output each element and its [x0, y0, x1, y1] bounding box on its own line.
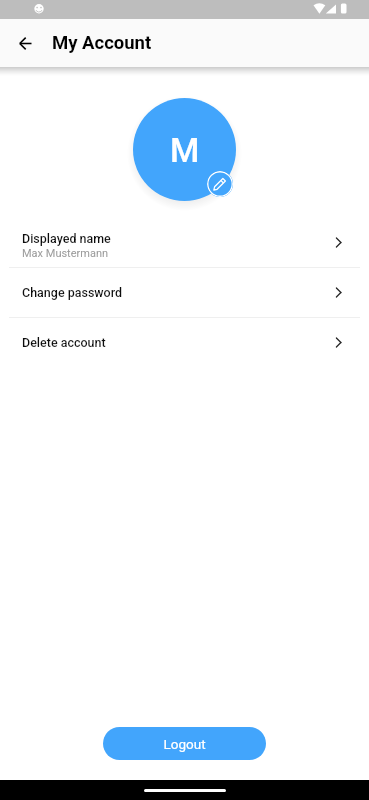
staticText: Delete account — [22, 335, 106, 350]
button[interactable]: Delete account — [0, 318, 369, 367]
button[interactable]: Edit profile picture — [207, 171, 233, 197]
staticText: Max Mustermann — [22, 247, 109, 260]
staticText: Logout — [163, 736, 206, 752]
button[interactable]: M — [133, 98, 236, 201]
staticText: M — [170, 131, 200, 170]
staticText: My Account — [52, 32, 152, 54]
button[interactable]: Change password — [0, 268, 369, 317]
staticText: Change password — [22, 285, 123, 300]
button[interactable]: Displayed name — [0, 218, 369, 267]
staticText: Displayed name — [22, 231, 111, 246]
button[interactable]: Back — [3, 21, 47, 65]
button[interactable]: Logout — [103, 727, 266, 760]
